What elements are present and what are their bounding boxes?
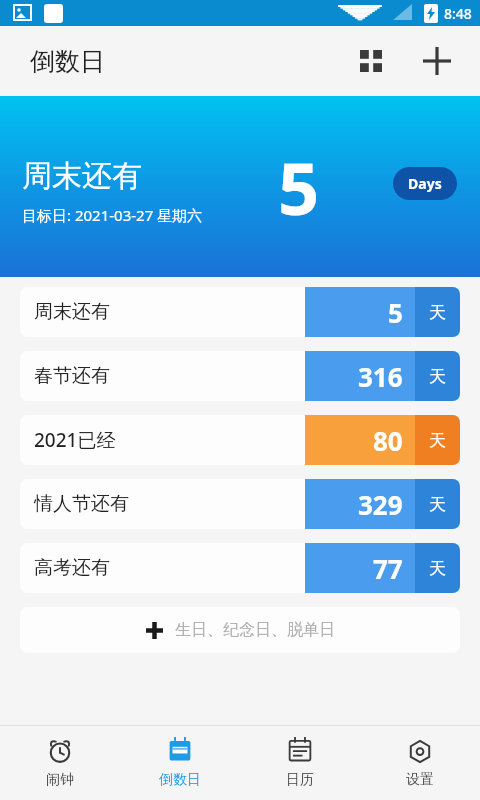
staticText: 周末还有	[34, 300, 305, 324]
button[interactable]: 设置	[360, 726, 480, 800]
button[interactable]: 周末还有	[20, 287, 460, 337]
staticText: 目标日: 2021-03-27 星期六	[22, 205, 203, 225]
staticText: 2021已经	[34, 427, 305, 453]
button[interactable]: Grid view	[348, 38, 394, 84]
staticText: 8:48	[444, 4, 472, 23]
button[interactable]: 情人节还有	[20, 479, 460, 529]
button[interactable]: 倒数日	[120, 726, 240, 800]
button[interactable]: 日历	[240, 726, 360, 800]
button[interactable]: 闹钟	[0, 726, 120, 800]
staticText: 天	[429, 366, 446, 387]
staticText: 倒数日	[30, 46, 105, 77]
staticText: 天	[429, 494, 446, 515]
staticText: 天	[429, 302, 446, 323]
staticText: 77	[373, 551, 403, 586]
staticText: 高考还有	[34, 556, 305, 580]
staticText: 情人节还有	[34, 492, 305, 516]
staticText: 设置	[406, 771, 434, 789]
button[interactable]: Add countdown	[412, 36, 462, 86]
button[interactable]: 2021已经	[20, 415, 460, 465]
button[interactable]: 春节还有	[20, 351, 460, 401]
staticText: 天	[429, 430, 446, 451]
staticText: 80	[373, 423, 403, 458]
staticText: 日历	[286, 771, 314, 789]
staticText: 春节还有	[34, 364, 305, 388]
staticText: 生日、纪念日、脱单日	[175, 620, 335, 640]
staticText: 天	[429, 558, 446, 579]
staticText: 周末还有	[22, 157, 142, 195]
button[interactable]: 高考还有	[20, 543, 460, 593]
staticText: 闹钟	[46, 771, 74, 789]
button[interactable]: 生日、纪念日、脱单日	[20, 607, 460, 653]
button[interactable]: 周末还有	[0, 96, 480, 277]
staticText: 5	[388, 295, 403, 330]
staticText: 329	[358, 487, 403, 522]
staticText: Days	[408, 174, 442, 193]
staticText: 5	[278, 138, 320, 236]
staticText: 倒数日	[159, 771, 201, 789]
staticText: 316	[358, 359, 403, 394]
